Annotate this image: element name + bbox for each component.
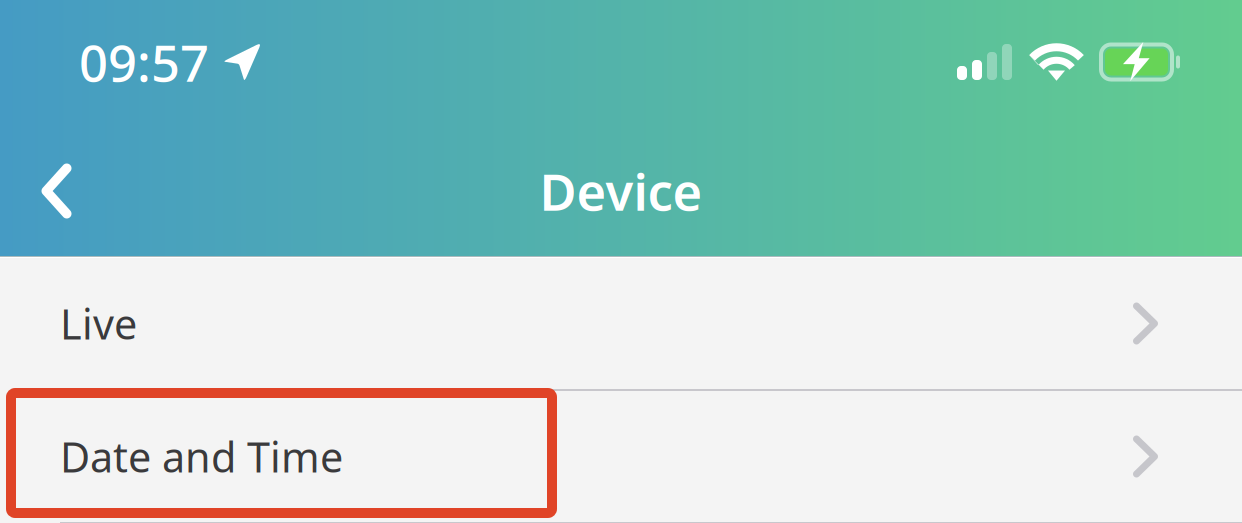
staticText: Device xyxy=(539,157,702,225)
button[interactable]: Live xyxy=(0,258,1242,389)
staticText: 09:57 xyxy=(79,28,209,96)
button[interactable]: Date and Time xyxy=(0,391,1242,522)
staticText: Date and Time xyxy=(60,429,343,484)
staticText: Live xyxy=(60,296,137,351)
button[interactable]: Back xyxy=(0,125,113,257)
